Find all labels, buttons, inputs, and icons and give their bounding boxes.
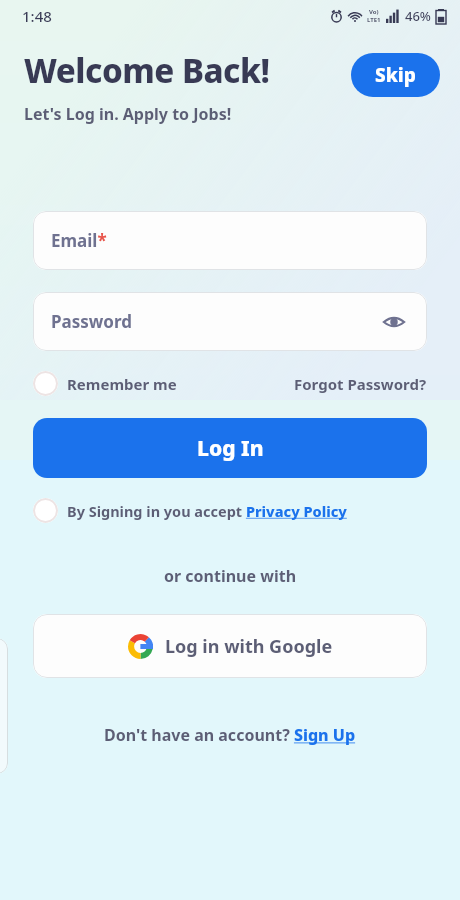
staticText: Log In (197, 434, 264, 463)
staticText: 46% (405, 7, 431, 25)
staticText: Forgot Password? (294, 374, 427, 394)
button[interactable]: Don't have an account? Sign Up (104, 724, 356, 746)
button[interactable]: Log in with Google (33, 614, 427, 678)
staticText: By Signing in you accept Privacy Policy (67, 501, 347, 521)
button[interactable]: Log In (33, 418, 427, 478)
staticText: Skip (375, 62, 416, 88)
button[interactable]: Remember me (33, 371, 177, 396)
button[interactable]: Forgot Password? (294, 374, 427, 394)
button[interactable]: Email* (33, 211, 427, 270)
staticText: Let's Log in. Apply to Jobs! (24, 103, 232, 125)
staticText: LTE1 (367, 16, 381, 24)
staticText: Log in with Google (165, 634, 333, 659)
staticText: or continue with (164, 565, 297, 587)
staticText: 1:48 (22, 6, 52, 26)
button[interactable]: By Signing in you accept Privacy Policy (33, 498, 347, 523)
button[interactable]: Password (33, 292, 427, 351)
staticText: Remember me (67, 374, 177, 394)
staticText: Welcome Back! (24, 48, 270, 93)
button[interactable]: Skip (351, 53, 440, 97)
button[interactable]: Show password (379, 307, 409, 337)
staticText: Don't have an account? Sign Up (104, 724, 356, 746)
staticText: Password (51, 310, 132, 333)
staticText: Email* (51, 229, 107, 252)
staticText: Vo) (369, 8, 379, 16)
